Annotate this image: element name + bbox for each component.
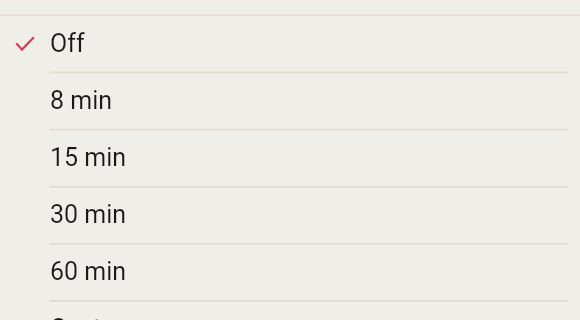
button[interactable]: 30 min [0,186,580,243]
button[interactable]: 8 min [0,72,580,129]
staticText: Off [50,29,85,58]
staticText: 60 min [50,257,127,286]
button[interactable]: 60 min [0,243,580,300]
button[interactable]: 15 min [0,129,580,186]
other: Selected [14,33,36,51]
staticText: 8 min [50,86,113,115]
button[interactable]: Custom [0,300,580,320]
button[interactable]: Selected [0,15,580,72]
staticText: Custom [50,314,138,320]
staticText: 30 min [50,200,127,229]
staticText: 15 min [50,143,127,172]
